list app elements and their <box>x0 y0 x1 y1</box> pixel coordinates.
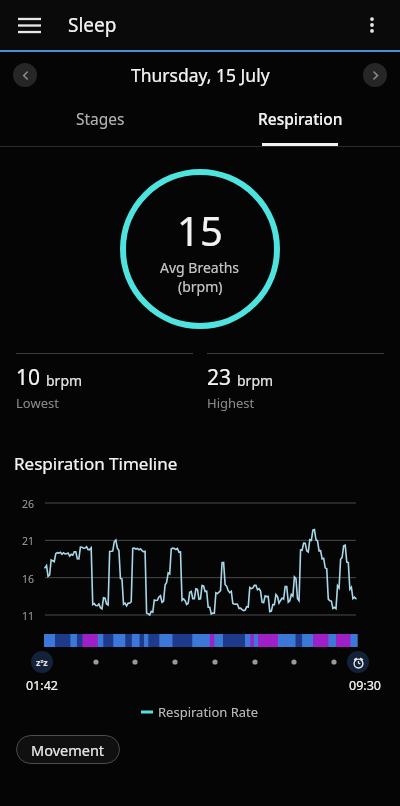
staticText: Movement <box>31 740 105 760</box>
button[interactable]: Stages <box>0 98 200 146</box>
staticText: 26 <box>10 497 34 511</box>
staticText: zᶻz <box>36 656 48 668</box>
staticText: 16 <box>10 572 34 586</box>
staticText: brpm <box>237 371 274 390</box>
staticText: Respiration <box>258 108 343 129</box>
staticText: (brpm) <box>178 277 223 296</box>
button[interactable]: Movement <box>16 735 120 764</box>
staticText: Avg Breaths <box>160 258 240 277</box>
staticText: 23 <box>207 363 232 392</box>
staticText: Highest <box>207 394 255 412</box>
staticText: Respiration Rate <box>158 703 259 721</box>
staticText: Thursday, 15 July <box>131 63 270 87</box>
button[interactable]: 23 <box>207 353 384 412</box>
button[interactable]: Wake alarm <box>347 651 369 673</box>
staticText: brpm <box>46 371 83 390</box>
staticText: Lowest <box>16 394 59 412</box>
staticText: 15 <box>177 203 223 257</box>
button[interactable]: Sleep start <box>31 651 53 673</box>
staticText: 11 <box>10 609 34 623</box>
staticText: 09:30 <box>349 677 381 694</box>
button[interactable]: Previous day <box>13 63 37 87</box>
staticText: Respiration Timeline <box>14 452 178 475</box>
staticText: Sleep <box>68 12 117 38</box>
button[interactable]: Respiration <box>200 98 400 146</box>
button[interactable]: Next day <box>363 63 387 87</box>
staticText: 10 <box>16 363 41 392</box>
staticText: Stages <box>76 108 125 129</box>
button[interactable]: Menu <box>9 5 49 45</box>
button[interactable]: 10 <box>16 353 193 412</box>
button[interactable]: More options <box>352 5 392 45</box>
staticText: 01:42 <box>26 677 58 694</box>
staticText: 21 <box>10 534 34 548</box>
